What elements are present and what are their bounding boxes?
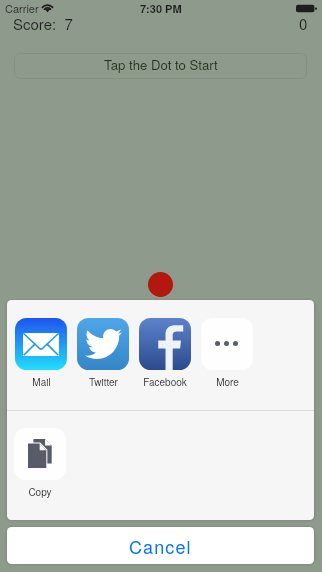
staticText: Facebook bbox=[143, 375, 187, 389]
button[interactable]: More bbox=[201, 318, 253, 389]
staticText: 7:30 PM bbox=[140, 1, 182, 17]
staticText: Cancel bbox=[129, 533, 192, 559]
button[interactable]: Copy bbox=[14, 428, 66, 499]
button[interactable]: Mail bbox=[15, 318, 67, 389]
button[interactable]: Dot bbox=[148, 272, 173, 297]
staticText: Carrier bbox=[5, 0, 39, 16]
staticText: Twitter bbox=[89, 375, 118, 389]
button[interactable]: Tap the Dot to Start bbox=[14, 53, 307, 79]
staticText: Mail bbox=[32, 375, 51, 389]
staticText: Score: 7 bbox=[13, 13, 73, 34]
button[interactable]: Cancel bbox=[7, 527, 314, 564]
button[interactable]: Facebook bbox=[139, 318, 191, 389]
staticText: Tap the Dot to Start bbox=[104, 55, 218, 74]
staticText: Copy bbox=[28, 485, 52, 499]
staticText: 0 bbox=[299, 13, 308, 34]
button[interactable]: Twitter bbox=[77, 318, 129, 389]
staticText: More bbox=[216, 375, 239, 389]
